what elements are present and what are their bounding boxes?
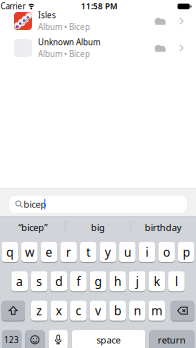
button[interactable]: Delete — [171, 301, 194, 321]
button[interactable]: q — [1, 242, 18, 262]
button[interactable]: i — [139, 242, 155, 262]
staticText: space — [97, 334, 121, 346]
button[interactable]: m — [148, 301, 165, 321]
staticText: a — [16, 273, 23, 289]
staticText: Isles — [38, 10, 56, 20]
staticText: i — [145, 244, 148, 260]
button[interactable]: r — [60, 242, 77, 262]
button[interactable]: h — [109, 271, 126, 291]
staticText: j — [136, 273, 139, 289]
staticText: m — [151, 303, 162, 319]
staticText: g — [94, 273, 101, 289]
button[interactable]: birthday — [131, 216, 195, 238]
button[interactable]: e — [41, 242, 57, 262]
staticText: p — [183, 244, 190, 260]
staticText: q — [6, 244, 13, 260]
button[interactable]: f — [70, 271, 87, 291]
button[interactable]: d — [50, 271, 67, 291]
button[interactable]: k — [148, 271, 165, 291]
button[interactable]: t — [80, 242, 96, 262]
button[interactable]: b — [109, 301, 126, 321]
button[interactable]: a — [11, 271, 28, 291]
button[interactable]: y — [99, 242, 116, 262]
button[interactable]: z — [31, 301, 47, 321]
staticText: v — [95, 303, 101, 319]
button[interactable]: x — [50, 301, 67, 321]
button[interactable]: Isles — [0, 7, 196, 34]
staticText: s — [36, 273, 42, 289]
staticText: Album • Bicep — [38, 48, 90, 59]
button[interactable]: Unknown Album — [0, 34, 196, 61]
staticText: y — [105, 244, 111, 260]
staticText: c — [75, 303, 81, 319]
staticText: f — [76, 273, 80, 289]
button[interactable]: Emoji — [25, 330, 44, 348]
button[interactable]: n — [129, 301, 145, 321]
button[interactable]: l — [168, 271, 185, 291]
staticText: l — [175, 273, 178, 289]
button[interactable]: Search field — [8, 195, 187, 213]
button[interactable]: v — [90, 301, 106, 321]
button[interactable]: c — [70, 301, 87, 321]
staticText: t — [86, 244, 90, 260]
button[interactable]: Dictation — [49, 330, 68, 348]
button[interactable]: u — [119, 242, 136, 262]
staticText: 123 — [4, 334, 19, 345]
staticText: bicep — [23, 198, 46, 210]
staticText: x — [56, 303, 62, 319]
staticText: d — [55, 273, 62, 289]
staticText: o — [163, 244, 170, 260]
button[interactable]: w — [21, 242, 38, 262]
staticText: e — [45, 244, 52, 260]
button[interactable]: big — [66, 216, 130, 238]
staticText: k — [154, 273, 160, 289]
staticText: big — [91, 221, 105, 234]
staticText: b — [114, 303, 121, 319]
staticText: Album • Bicep — [38, 21, 90, 32]
staticText: z — [36, 303, 42, 319]
staticText: return — [158, 334, 186, 346]
button[interactable]: Shift — [2, 301, 25, 321]
button[interactable]: space — [72, 330, 145, 348]
button[interactable]: o — [158, 242, 175, 262]
button[interactable]: g — [90, 271, 106, 291]
button[interactable]: “bicep” — [1, 216, 65, 238]
staticText: birthday — [145, 221, 182, 234]
staticText: n — [134, 303, 141, 319]
button[interactable]: j — [129, 271, 145, 291]
staticText: 11:58 PM — [81, 1, 117, 11]
staticText: Unknown Album — [38, 37, 100, 47]
button[interactable]: Numbers — [2, 330, 21, 348]
staticText: h — [114, 273, 121, 289]
staticText: u — [124, 244, 131, 260]
button[interactable]: p — [178, 242, 194, 262]
button[interactable]: return — [149, 330, 194, 348]
button[interactable]: s — [31, 271, 47, 291]
staticText: “bicep” — [18, 221, 47, 234]
staticText: r — [66, 244, 71, 260]
staticText: Carrier — [0, 1, 25, 11]
staticText: w — [25, 244, 34, 260]
